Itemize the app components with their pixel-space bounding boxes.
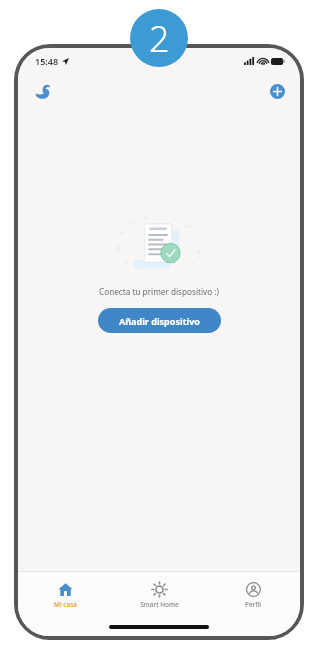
button[interactable]: Mi casa xyxy=(28,580,102,611)
staticText: 15:48 xyxy=(35,55,59,67)
button[interactable]: Add device xyxy=(266,80,288,102)
staticText: Conecta tu primer dispositivo :) xyxy=(99,286,219,297)
button[interactable]: Añadir dispositivo xyxy=(98,308,221,333)
button[interactable]: Perfil xyxy=(216,580,290,611)
staticText: Perfil xyxy=(245,600,261,609)
staticText: Smart Home xyxy=(140,600,179,609)
staticText: Mi casa xyxy=(54,600,77,609)
button[interactable]: Logo xyxy=(30,79,54,103)
staticText: Añadir dispositivo xyxy=(119,315,200,327)
staticText: 2 xyxy=(149,14,170,63)
button[interactable]: Smart Home xyxy=(122,580,196,611)
